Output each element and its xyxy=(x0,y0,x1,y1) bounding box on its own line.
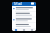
button[interactable] xyxy=(12,17,36,22)
staticText: Mail xyxy=(14,1,22,6)
button[interactable]: Compose xyxy=(31,1,36,6)
button[interactable]: Mail xyxy=(12,1,23,6)
button[interactable]: Compose xyxy=(28,28,36,32)
button[interactable]: Mailboxes xyxy=(12,28,20,32)
button[interactable] xyxy=(12,12,36,17)
button[interactable] xyxy=(12,23,36,28)
button[interactable]: Filters xyxy=(20,28,28,32)
button[interactable] xyxy=(12,6,36,11)
